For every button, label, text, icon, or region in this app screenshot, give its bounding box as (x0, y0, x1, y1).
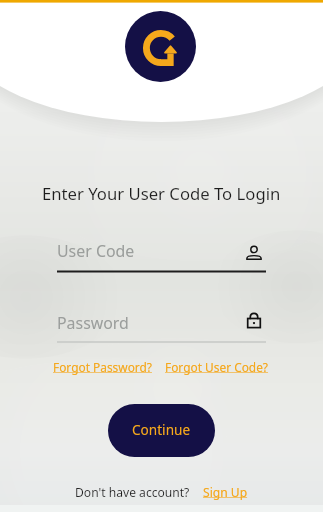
button[interactable]: User account (245, 244, 263, 262)
staticText: Don't have account? (75, 484, 190, 500)
button[interactable]: Forgot User Code? (165, 359, 269, 375)
button[interactable]: Sign Up (203, 484, 248, 500)
other: App logo (125, 11, 196, 82)
staticText: Enter Your User Code To Login (42, 182, 281, 205)
staticText: Forgot Password? (53, 359, 152, 375)
button[interactable]: Forgot Password? (53, 359, 152, 375)
button[interactable]: Password (245, 311, 263, 329)
button[interactable]: Password (57, 312, 266, 334)
staticText: Continue (132, 420, 191, 439)
staticText: Sign Up (203, 484, 248, 500)
button[interactable]: Continue (108, 404, 215, 457)
staticText: Password (57, 312, 129, 334)
button[interactable]: User Code (57, 240, 266, 262)
staticText: Forgot User Code? (165, 359, 269, 375)
staticText: User Code (57, 240, 135, 262)
